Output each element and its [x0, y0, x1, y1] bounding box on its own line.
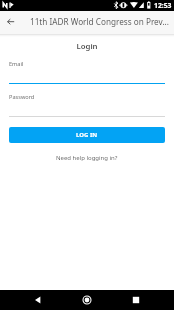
staticText: Login — [0, 41, 174, 52]
button[interactable]: LOG IN — [9, 127, 165, 143]
button[interactable]: Home — [72, 290, 102, 310]
button[interactable]: Back — [23, 290, 53, 310]
staticText: Password — [9, 93, 35, 101]
staticText: 11th IADR World Congress on Prev... — [30, 16, 169, 27]
staticText: LOG IN — [76, 131, 98, 139]
staticText: 12:53 — [154, 1, 172, 10]
button[interactable]: Need help logging in? — [56, 154, 118, 162]
staticText: Email — [9, 60, 24, 68]
button[interactable]: Back — [0, 11, 21, 32]
staticText: Need help logging in? — [56, 154, 118, 162]
button[interactable]: Recents — [121, 290, 151, 310]
